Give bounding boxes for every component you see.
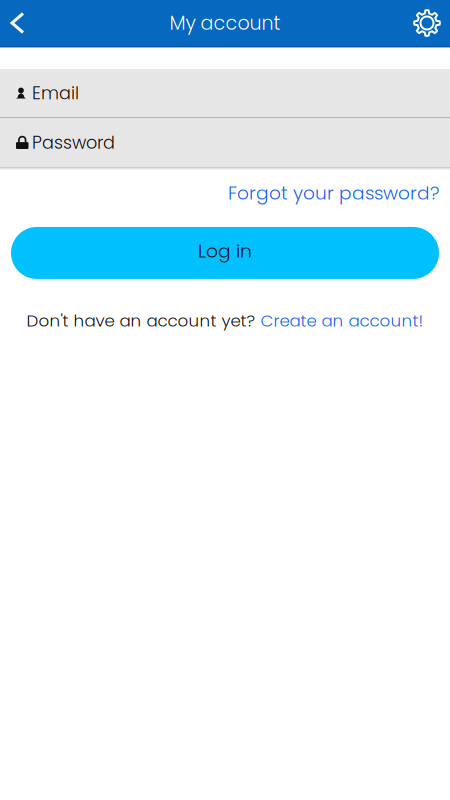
staticText: Don't have an account yet?: [26, 309, 255, 332]
button[interactable]: Email: [0, 69, 450, 117]
button[interactable]: Log in: [11, 227, 439, 279]
staticText: Password: [32, 130, 115, 155]
staticText: Create an account!: [260, 309, 423, 332]
button[interactable]: Forgot your password?: [218, 176, 439, 210]
staticText: My account: [169, 10, 280, 36]
staticText: Email: [32, 81, 79, 105]
button[interactable]: Settings: [399, 0, 450, 46]
button[interactable]: Create an account!: [260, 309, 423, 332]
staticText: Log in: [198, 238, 252, 264]
button[interactable]: Password: [0, 118, 450, 167]
staticText: Forgot your password?: [228, 180, 439, 206]
button[interactable]: Back: [0, 1, 37, 44]
